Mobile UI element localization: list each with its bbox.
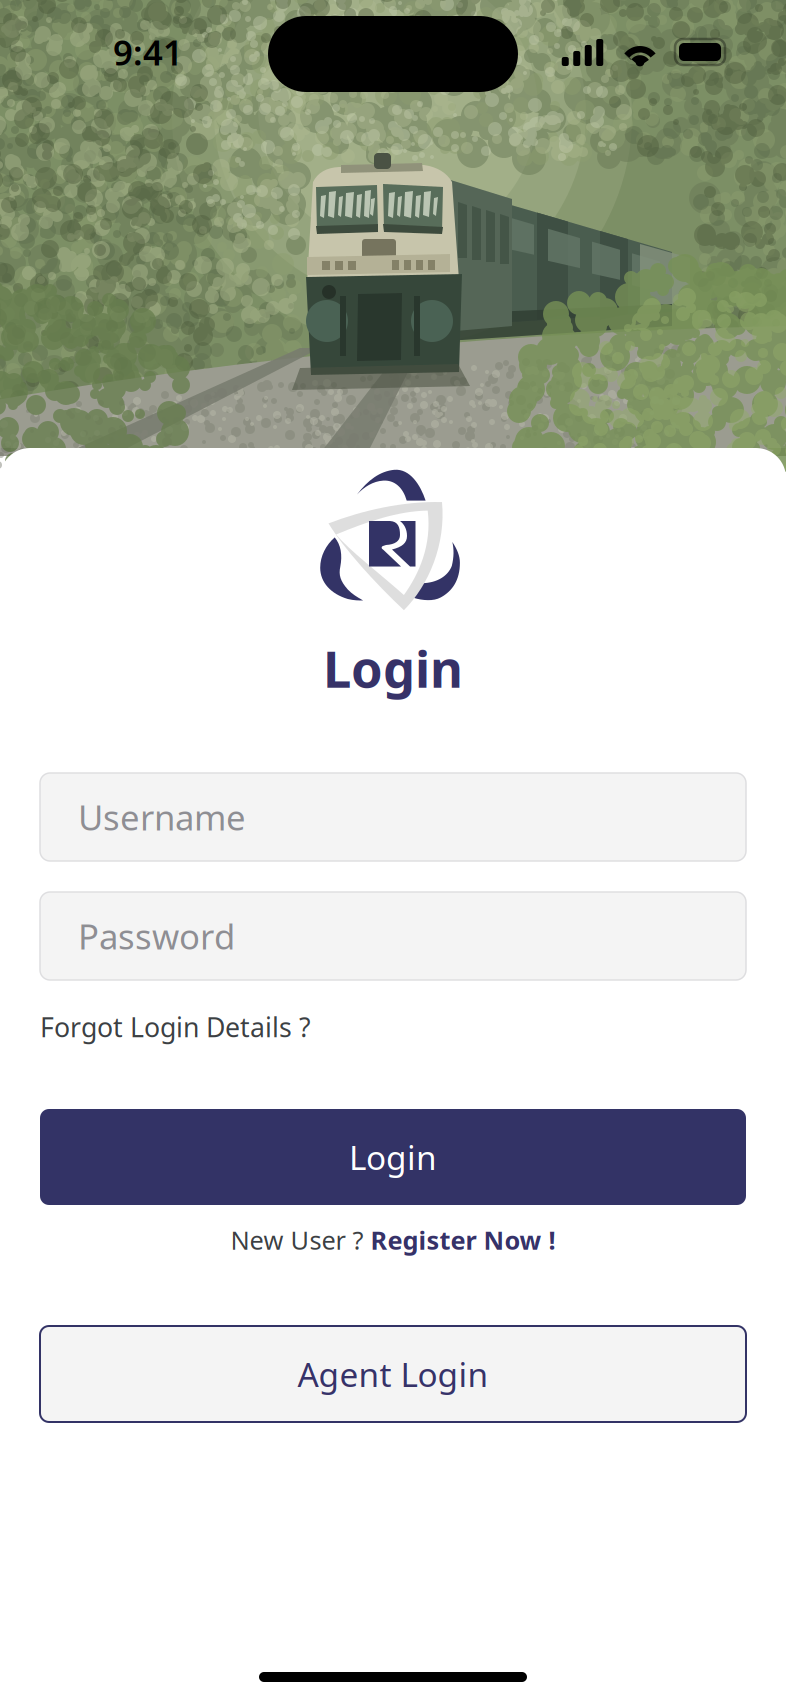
staticText: Password — [78, 913, 235, 959]
staticText: Login — [323, 634, 463, 702]
button[interactable]: New User ? — [230, 1222, 555, 1258]
staticText: 9:41 — [113, 29, 183, 75]
staticText: Username — [78, 794, 246, 840]
staticText: Forgot Login Details ? — [40, 1009, 311, 1045]
staticText: Register Now ! — [370, 1223, 555, 1257]
staticText: Login — [349, 1135, 437, 1179]
button[interactable]: Forgot Login Details ? — [40, 1007, 746, 1047]
staticText: Agent Login — [297, 1352, 488, 1396]
button[interactable]: Login — [40, 1109, 746, 1205]
button[interactable]: Agent Login — [40, 1326, 746, 1422]
staticText: New User ? — [230, 1223, 370, 1257]
